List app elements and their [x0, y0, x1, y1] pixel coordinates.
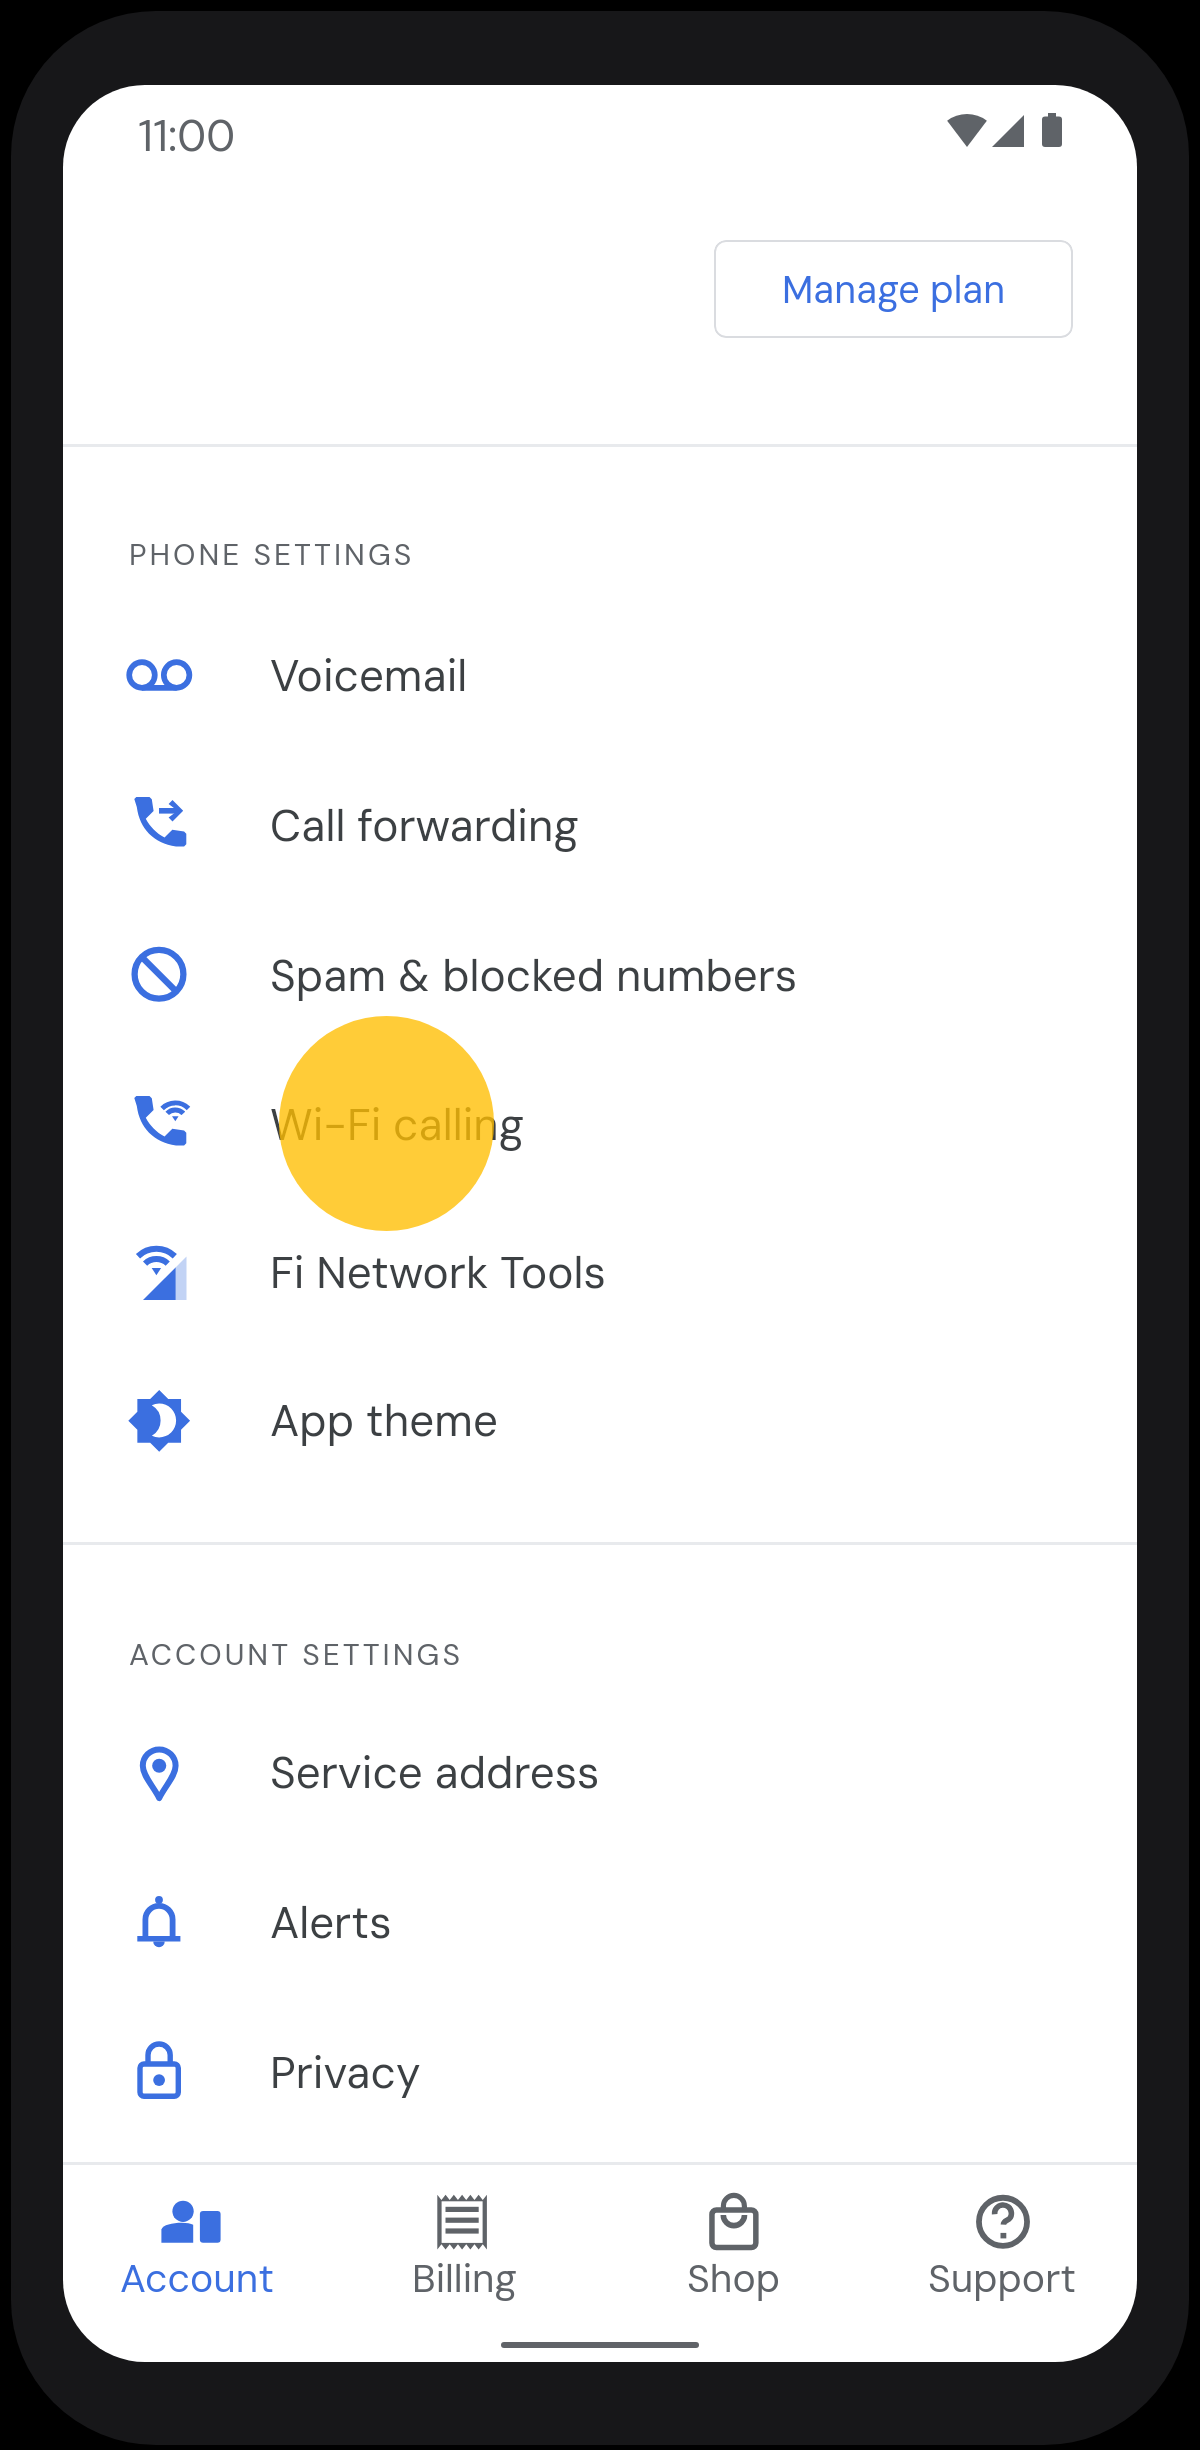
staticText: App theme: [270, 1392, 498, 1449]
staticText: Spam & blocked numbers: [270, 947, 798, 1004]
button[interactable]: Voicemail: [63, 600, 1137, 750]
button[interactable]: Shop: [599, 2190, 868, 2313]
button[interactable]: App theme: [63, 1345, 1137, 1495]
staticText: 11:00: [138, 107, 236, 164]
button[interactable]: Manage plan: [714, 240, 1073, 338]
button[interactable]: Support: [868, 2190, 1137, 2313]
staticText: PHONE SETTINGS: [129, 535, 415, 574]
other: Wi-Fi calling: [126, 1091, 192, 1157]
staticText: Voicemail: [270, 647, 468, 704]
other: Fi Network Tools: [126, 1239, 192, 1305]
other: Spam: [126, 942, 192, 1008]
staticText: Service address: [270, 1744, 600, 1801]
staticText: Shop: [687, 2253, 781, 2304]
button[interactable]: Wi-Fi calling: [63, 1049, 1137, 1199]
button[interactable]: Spam: [63, 900, 1137, 1050]
other: Privacy: [126, 2039, 192, 2105]
other: Alerts: [126, 1889, 192, 1955]
other: Voicemail: [126, 642, 192, 708]
other: Service address: [126, 1739, 192, 1805]
button[interactable]: Privacy: [63, 1997, 1137, 2147]
staticText: Fi Network Tools: [270, 1244, 606, 1301]
staticText: Privacy: [270, 2044, 421, 2101]
button[interactable]: Fi Network Tools: [63, 1197, 1137, 1347]
staticText: Account: [120, 2253, 275, 2304]
other: App theme: [126, 1387, 192, 1453]
other: Call forwarding: [126, 792, 192, 858]
staticText: Call forwarding: [270, 797, 579, 854]
staticText: Wi-Fi calling: [270, 1096, 524, 1153]
button[interactable]: Account: [63, 2190, 331, 2313]
staticText: ACCOUNT SETTINGS: [129, 1635, 464, 1674]
button[interactable]: Call forwarding: [63, 750, 1137, 900]
staticText: Manage plan: [782, 265, 1006, 314]
button[interactable]: Billing: [331, 2190, 599, 2313]
staticText: Support: [928, 2253, 1077, 2304]
staticText: Billing: [412, 2253, 518, 2304]
staticText: Alerts: [270, 1894, 392, 1951]
button[interactable]: Alerts: [63, 1847, 1137, 1997]
button[interactable]: Service address: [63, 1697, 1137, 1847]
